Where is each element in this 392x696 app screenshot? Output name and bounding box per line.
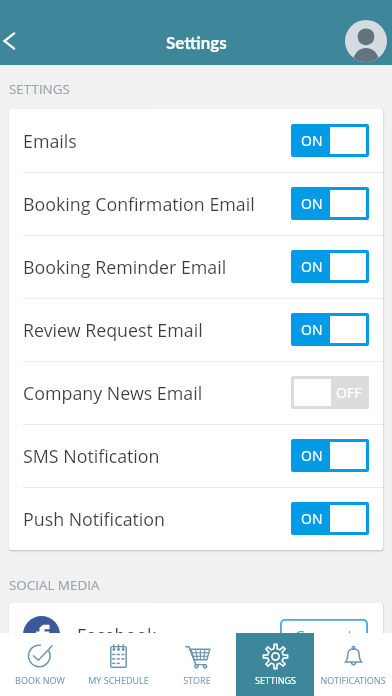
- button[interactable]: SMS Notification: [9, 424, 383, 487]
- button[interactable]: Toggle on: [291, 502, 369, 535]
- staticText: Emails: [23, 129, 77, 153]
- staticText: SOCIAL MEDIA: [9, 576, 100, 594]
- staticText: ON: [301, 257, 323, 276]
- button[interactable]: MY SCHEDULE: [79, 633, 158, 696]
- staticText: Review Request Email: [23, 318, 203, 342]
- staticText: Push Notification: [23, 507, 165, 531]
- staticText: STORE: [183, 674, 211, 686]
- staticText: ON: [301, 509, 323, 528]
- button[interactable]: Push Notification: [9, 487, 383, 550]
- staticText: NOTIFICATIONS: [320, 674, 386, 686]
- button[interactable]: Toggle on: [291, 187, 369, 220]
- staticText: ON: [301, 320, 323, 339]
- button[interactable]: Booking Reminder Email: [9, 235, 383, 298]
- staticText: MY SCHEDULE: [88, 674, 149, 686]
- button[interactable]: Profile: [345, 20, 387, 62]
- button[interactable]: Toggle on: [291, 439, 369, 472]
- staticText: OFF: [336, 383, 362, 402]
- button[interactable]: Emails: [9, 109, 383, 172]
- staticText: ON: [301, 194, 323, 213]
- staticText: Connect: [295, 625, 353, 645]
- button[interactable]: NOTIFICATIONS: [314, 633, 392, 696]
- staticText: Facebook: [77, 623, 157, 647]
- button[interactable]: BOOK NOW: [0, 633, 79, 696]
- button[interactable]: Booking Confirmation Email: [9, 172, 383, 235]
- staticText: BOOK NOW: [15, 674, 65, 686]
- staticText: Company News Email: [23, 381, 203, 405]
- staticText: Booking Reminder Email: [23, 255, 227, 279]
- button[interactable]: Facebook: [23, 603, 368, 666]
- staticText: SETTINGS: [9, 80, 70, 98]
- button[interactable]: SETTINGS: [236, 633, 314, 696]
- button[interactable]: Toggle on: [291, 124, 369, 157]
- button[interactable]: Company News Email: [9, 361, 383, 424]
- button[interactable]: Connect: [280, 619, 368, 651]
- button[interactable]: Toggle on: [291, 250, 369, 283]
- staticText: ON: [301, 131, 323, 150]
- staticText: Booking Confirmation Email: [23, 192, 255, 216]
- staticText: ON: [301, 446, 323, 465]
- button[interactable]: Back: [0, 17, 28, 65]
- staticText: SETTINGS: [255, 674, 296, 686]
- button[interactable]: STORE: [158, 633, 236, 696]
- button[interactable]: Review Request Email: [9, 298, 383, 361]
- staticText: SMS Notification: [23, 444, 160, 468]
- button[interactable]: Toggle off: [291, 376, 369, 409]
- button[interactable]: Toggle on: [291, 313, 369, 346]
- staticText: Settings: [166, 32, 227, 52]
